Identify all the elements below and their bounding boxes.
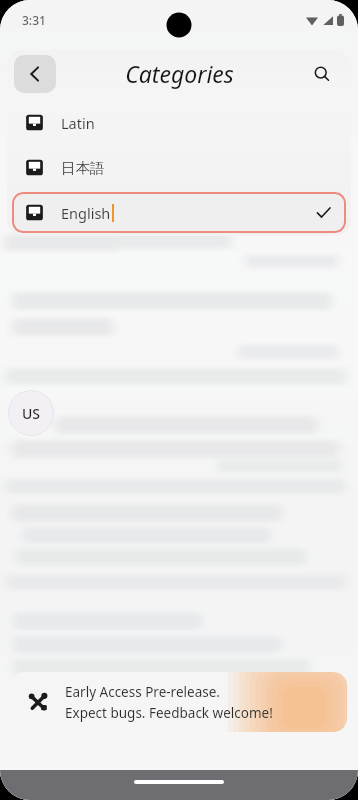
staticText: 3:31 [22, 12, 46, 28]
button[interactable]: Latin [12, 102, 346, 143]
button[interactable]: Back [14, 55, 56, 93]
button[interactable]: Early Access Pre-release. [11, 672, 347, 732]
button[interactable]: 日本語 [12, 147, 346, 188]
staticText: Early Access Pre-release. [65, 683, 220, 701]
staticText: US [22, 404, 41, 423]
button[interactable]: English [12, 192, 346, 233]
staticText: Categories [125, 58, 234, 89]
staticText: English [61, 203, 111, 223]
staticText: Latin [61, 113, 95, 133]
staticText: 日本語 [61, 159, 105, 177]
staticText: Expect bugs. Feedback welcome! [65, 704, 273, 722]
button[interactable]: US [8, 390, 54, 436]
button[interactable]: Search [305, 57, 339, 91]
